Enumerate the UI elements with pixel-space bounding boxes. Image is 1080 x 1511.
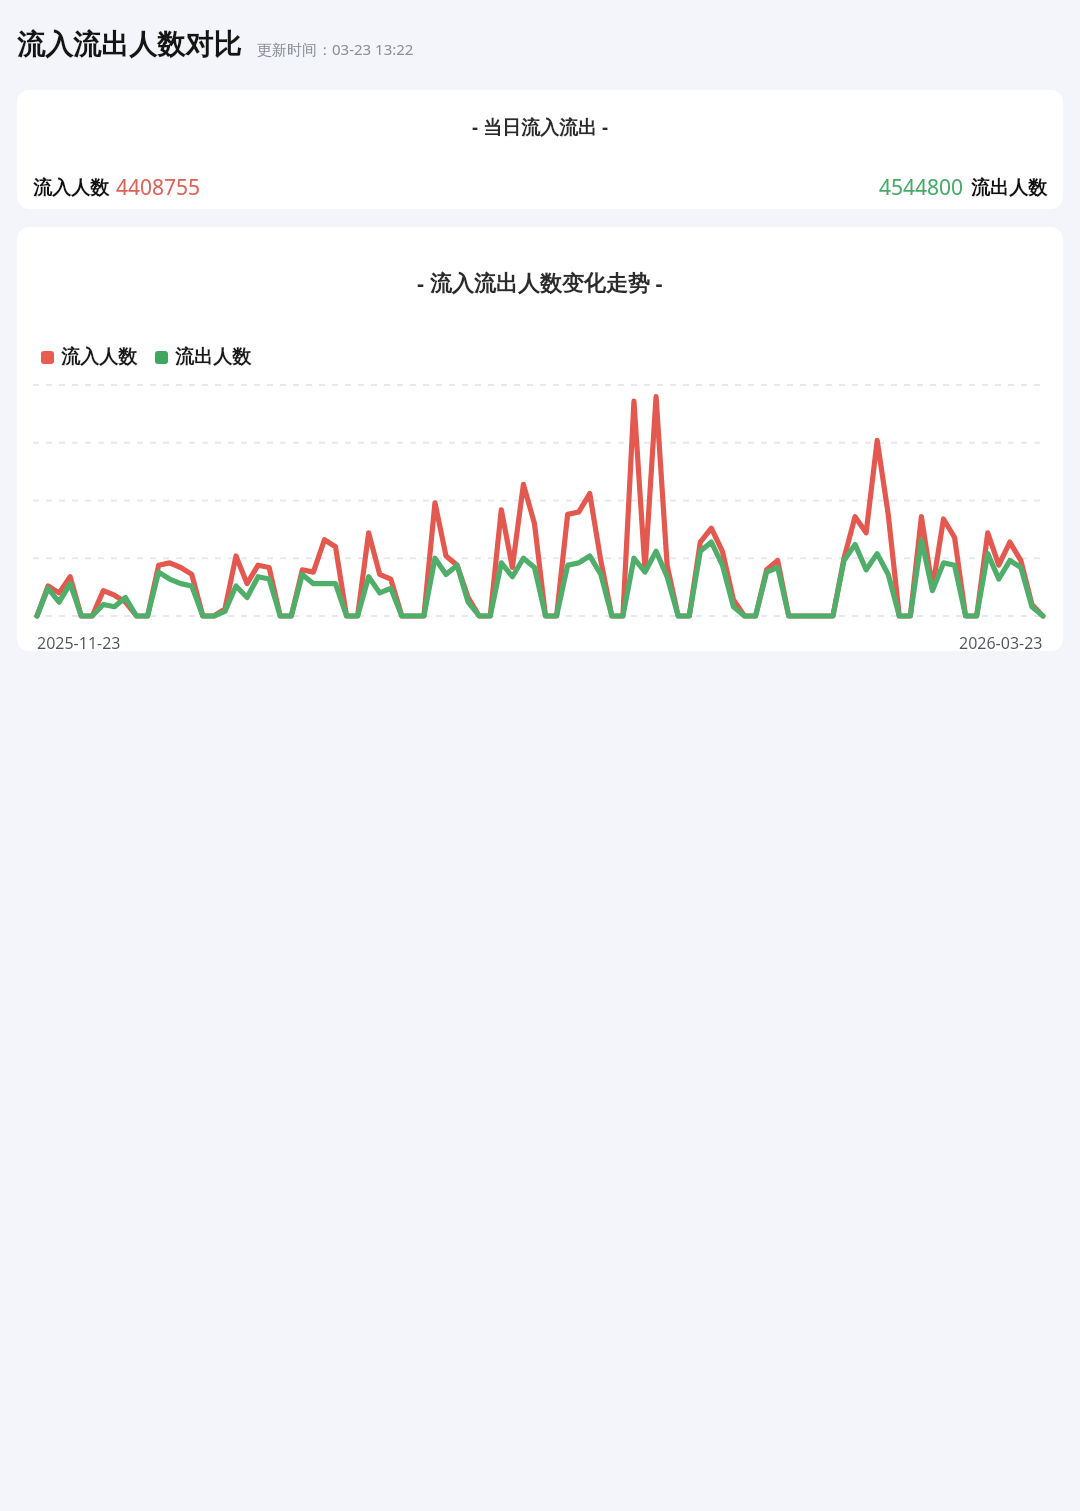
staticText: - 流入流出人数变化走势 -	[417, 267, 663, 297]
staticText: 流出人数	[175, 345, 251, 369]
staticText: 更新时间：03-23 13:22	[257, 39, 414, 59]
staticText: 流入人数	[33, 176, 109, 200]
staticText: 4408755	[116, 173, 201, 202]
staticText: 4544800	[879, 173, 964, 202]
staticText: - 当日流入流出 -	[472, 114, 609, 140]
button[interactable]: - 流入流出人数变化走势 -	[17, 227, 1063, 651]
staticText: 2025-11-23	[37, 632, 121, 651]
staticText: 流出人数	[971, 176, 1047, 200]
staticText: 流入人数	[61, 345, 137, 369]
staticText: 2026-03-23	[959, 632, 1043, 651]
staticText: 流入流出人数对比	[17, 27, 241, 62]
button[interactable]: - 当日流入流出 -	[17, 90, 1063, 209]
